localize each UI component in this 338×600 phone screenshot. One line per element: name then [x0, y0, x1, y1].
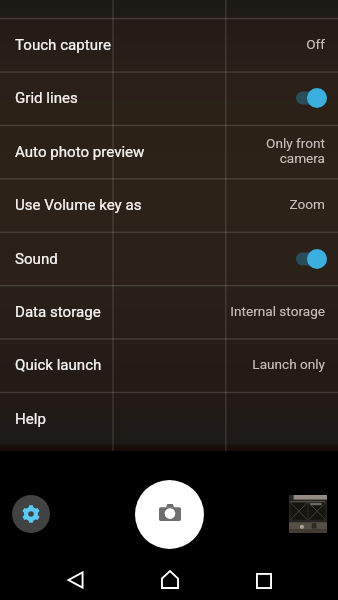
button[interactable]: Sound [0, 233, 338, 285]
button[interactable]: Touch capture [0, 19, 338, 71]
button[interactable]: Auto photo preview [0, 126, 338, 178]
button[interactable]: Data storage [0, 286, 338, 338]
staticText: Use Volume key as [15, 196, 142, 214]
button[interactable]: Quick launch [0, 339, 338, 391]
staticText: Internal storage [230, 303, 325, 319]
staticText: Zoom [289, 196, 325, 212]
staticText: Touch capture [15, 36, 111, 54]
button[interactable]: Gallery [289, 495, 327, 533]
button[interactable]: Grid lines [0, 72, 338, 124]
staticText: Only front camera [266, 135, 325, 167]
staticText: Launch only [252, 356, 325, 372]
staticText: Auto photo preview [15, 143, 145, 161]
button[interactable]: Recents [244, 561, 284, 600]
staticText: Grid lines [15, 89, 78, 107]
button[interactable]: Use Volume key as [0, 179, 338, 231]
staticText: Help [15, 410, 46, 428]
button[interactable]: Home [149, 558, 191, 600]
staticText: Data storage [15, 303, 101, 321]
button[interactable]: Settings [12, 495, 50, 533]
staticText: Quick launch [15, 356, 102, 374]
button[interactable]: Help [0, 393, 338, 445]
staticText: Off [306, 36, 325, 52]
button[interactable]: Shutter [135, 480, 204, 549]
staticText: Sound [15, 250, 58, 268]
button[interactable]: Back [55, 559, 96, 600]
